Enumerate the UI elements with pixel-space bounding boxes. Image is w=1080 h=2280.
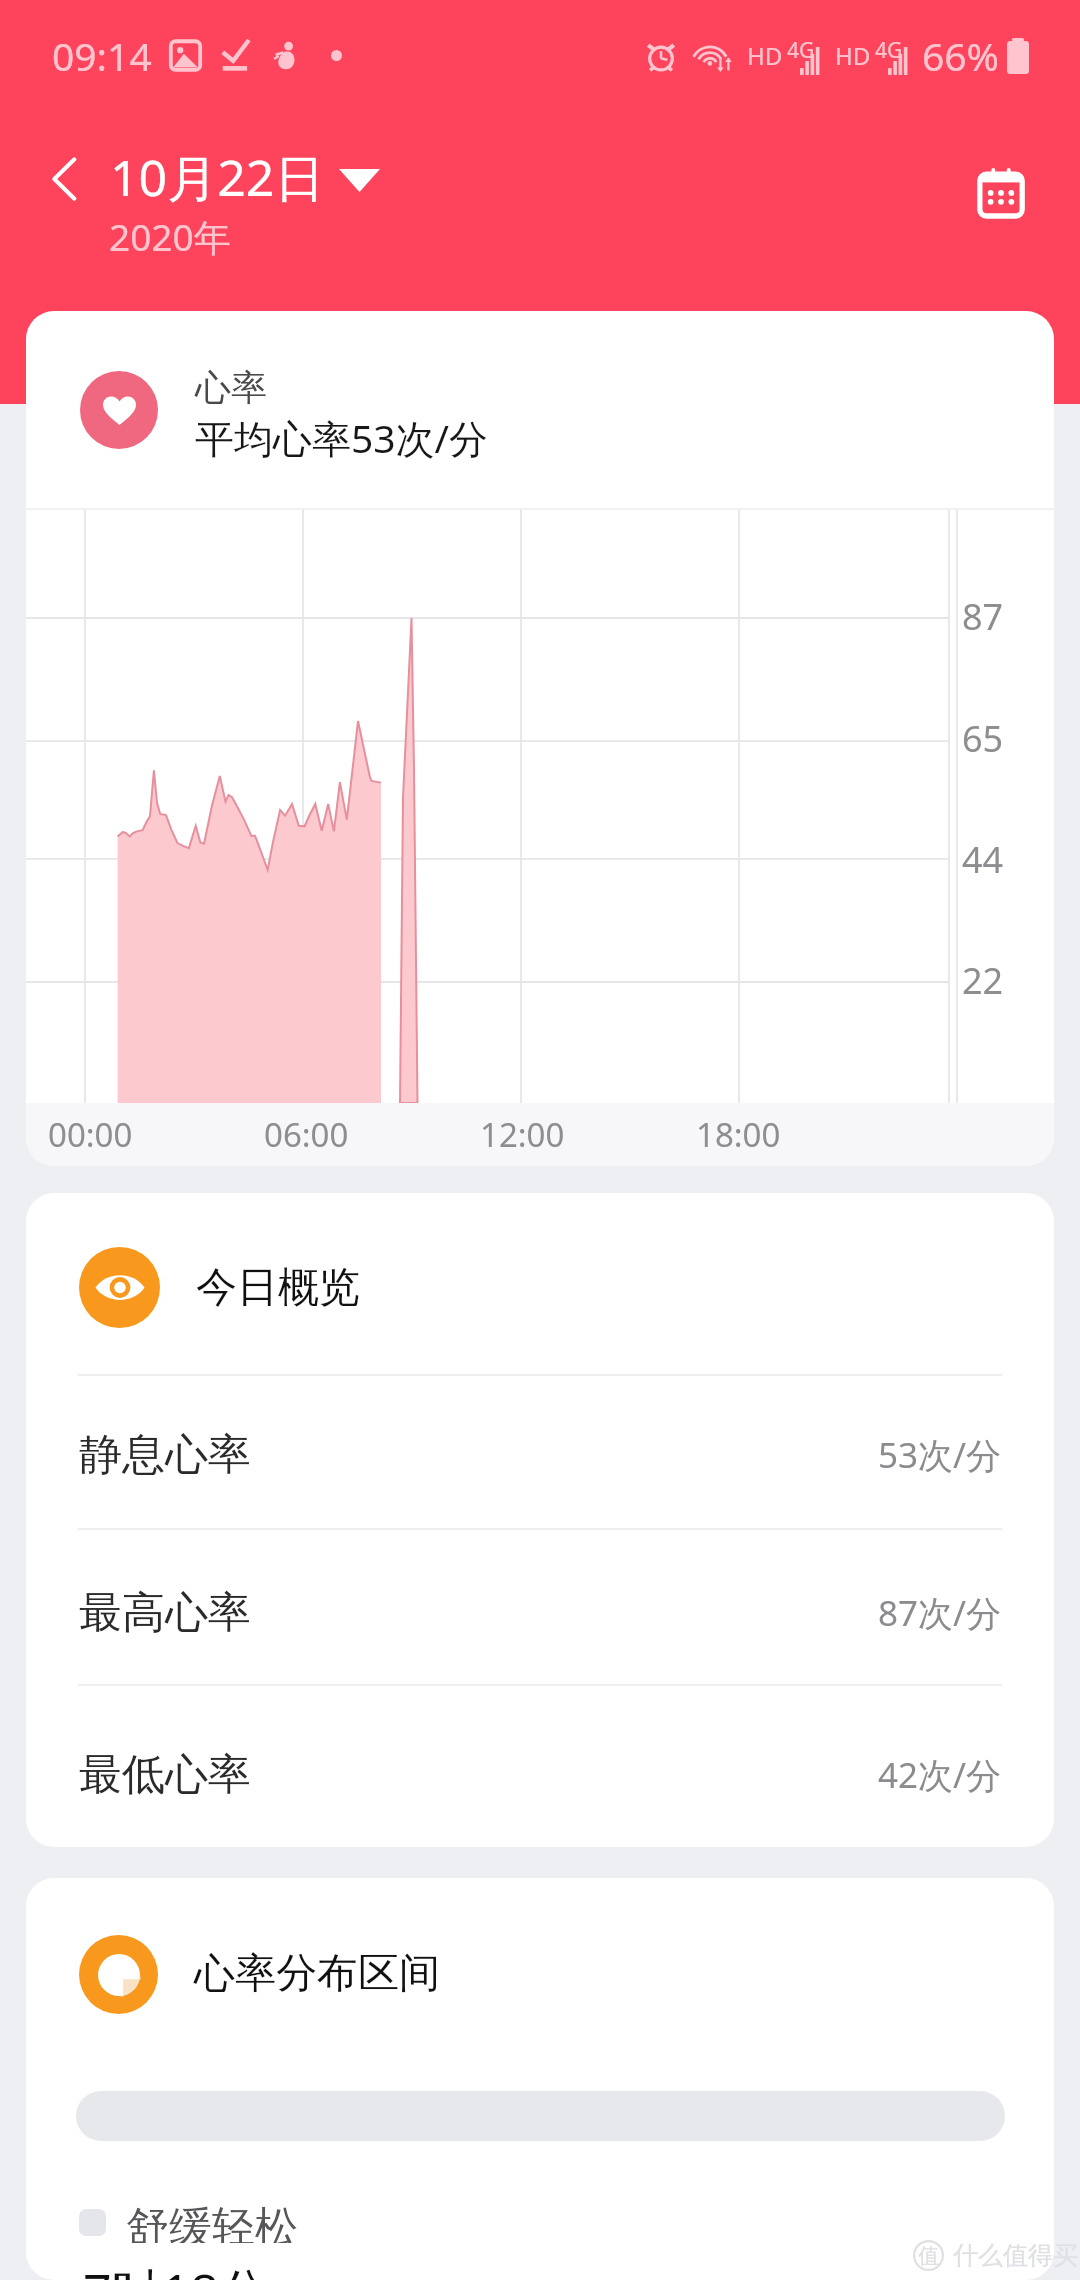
staticText: 心率: [195, 365, 267, 410]
staticText: HD: [835, 39, 871, 72]
staticText: 66%: [922, 29, 1000, 82]
staticText: HD: [747, 39, 783, 72]
other: Back: [48, 155, 78, 203]
button[interactable]: 心率: [26, 311, 1054, 1166]
staticText: 4G: [787, 36, 815, 65]
staticText: 4G: [875, 36, 903, 65]
staticText: 10月22日: [110, 143, 325, 211]
staticText: 舒缓轻松: [126, 2201, 298, 2243]
staticText: 最高心率: [79, 1586, 251, 1640]
staticText: 87: [962, 592, 1004, 641]
staticText: 44: [962, 835, 1004, 884]
staticText: 09:14: [52, 29, 152, 82]
staticText: 22: [962, 956, 1004, 1005]
staticText: 今日概览: [196, 1262, 360, 1314]
staticText: 心率分布区间: [194, 1948, 440, 2000]
staticText: 65: [962, 714, 1004, 763]
button[interactable]: 静息心率: [26, 1376, 1054, 1528]
staticText: 12:00: [480, 1112, 565, 1157]
staticText: 静息心率: [79, 1428, 251, 1482]
button[interactable]: 最低心率: [26, 1686, 1054, 1847]
staticText: 7时18分: [83, 2257, 269, 2280]
button[interactable]: 最高心率: [26, 1530, 1054, 1684]
staticText: 最低心率: [79, 1748, 251, 1802]
staticText: 42次/分: [878, 1751, 1002, 1799]
staticText: 什么值得买: [953, 2240, 1078, 2271]
button[interactable]: Back: [48, 143, 380, 262]
button[interactable]: Calendar: [961, 152, 1041, 232]
staticText: 53次/分: [878, 1431, 1002, 1479]
staticText: 87次/分: [878, 1589, 1002, 1637]
staticText: 18:00: [696, 1112, 781, 1157]
staticText: 平均心率53次/分: [195, 411, 489, 464]
staticText: 06:00: [264, 1112, 349, 1157]
staticText: 2020年: [109, 211, 231, 262]
staticText: 值: [918, 2243, 939, 2269]
staticText: 00:00: [48, 1112, 133, 1157]
